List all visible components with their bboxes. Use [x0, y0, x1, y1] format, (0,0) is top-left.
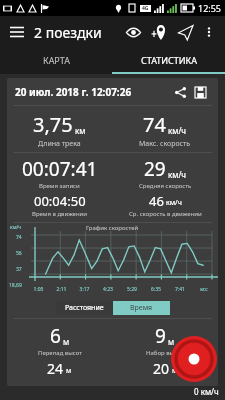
button[interactable]: Save — [192, 84, 208, 100]
staticText: 29 — [144, 156, 166, 182]
staticText: Ср. скорость в движении — [129, 210, 202, 218]
button[interactable]: Расстояние — [56, 301, 113, 315]
staticText: Макс. скорость — [139, 139, 191, 149]
staticText: 1:05 — [27, 286, 50, 293]
staticText: км/ч — [168, 125, 187, 136]
staticText: График скоростей — [86, 224, 139, 232]
button[interactable]: Visibility — [121, 20, 145, 44]
staticText: 18,69 — [9, 282, 22, 289]
staticText: 3,75 — [33, 111, 73, 138]
staticText: 37 — [16, 266, 22, 273]
staticText: 20 июл. 2018 г. 12:07:26 — [15, 85, 132, 99]
staticText: 4G — [142, 5, 149, 12]
staticText: 4:23 — [96, 286, 120, 293]
staticText: 3:17 — [73, 286, 96, 293]
button[interactable]: Menu — [6, 21, 28, 43]
staticText: км/ч — [166, 198, 182, 208]
staticText: 00:04:50 — [34, 192, 86, 210]
button[interactable]: КАРТА — [0, 48, 112, 72]
staticText: 56 — [16, 250, 22, 257]
staticText: Время в движении — [32, 210, 88, 218]
button[interactable]: Share — [172, 84, 188, 100]
staticText: КАРТА — [43, 54, 70, 66]
staticText: Время записи — [39, 182, 80, 190]
staticText: 74 — [16, 234, 22, 241]
button[interactable]: СТАТИСТИКА — [112, 48, 225, 72]
staticText: км/ч — [168, 169, 187, 180]
button[interactable]: Время — [113, 301, 170, 315]
staticText: Расстояние — [65, 303, 104, 313]
staticText: 7:41 — [168, 286, 192, 293]
staticText: 6:35 — [144, 286, 168, 293]
button[interactable]: More options — [199, 22, 219, 42]
staticText: м — [66, 366, 72, 376]
staticText: Средняя скорость — [139, 182, 192, 190]
staticText: Набор высот — [146, 349, 184, 357]
staticText: 46 — [149, 192, 164, 210]
staticText: 2:11 — [50, 286, 73, 293]
button[interactable]: Record — [171, 336, 217, 382]
staticText: м — [168, 336, 175, 347]
staticText: км — [75, 125, 86, 136]
staticText: м:с — [192, 286, 216, 293]
staticText: Время — [130, 303, 153, 313]
staticText: 74 — [143, 111, 166, 138]
button[interactable]: Navigate — [173, 20, 197, 44]
staticText: Длина трека — [38, 139, 81, 149]
staticText: 00:07:41 — [22, 156, 98, 182]
staticText: 20 — [153, 359, 170, 378]
staticText: 24 — [47, 359, 64, 378]
staticText: 5:29 — [120, 286, 144, 293]
staticText: 12:55 — [198, 2, 222, 14]
staticText: СТАТИСТИКА — [141, 54, 197, 66]
staticText: км/ч — [10, 224, 22, 231]
staticText: 2 поездки — [34, 23, 102, 42]
staticText: 6 — [50, 323, 61, 349]
staticText: м — [63, 336, 70, 347]
staticText: м — [172, 366, 178, 376]
staticText: Перепад высот — [38, 349, 82, 357]
button[interactable]: Add place — [147, 20, 171, 44]
staticText: 0 км/ч — [194, 386, 219, 397]
staticText: 9 — [155, 323, 166, 349]
